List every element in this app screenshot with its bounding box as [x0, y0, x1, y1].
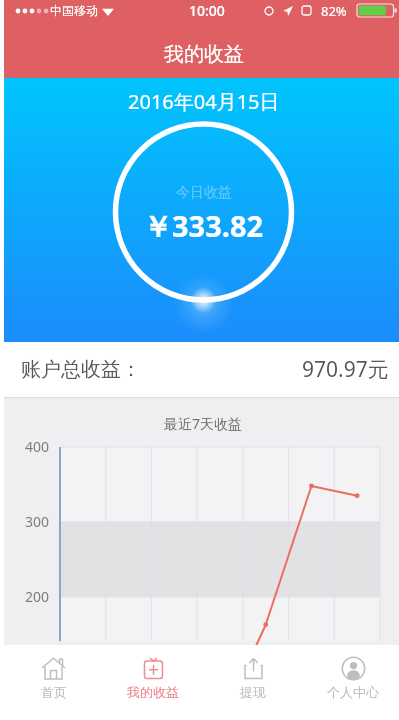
- staticText: 个人中心: [327, 684, 379, 700]
- staticText: 账户总收益：: [21, 357, 141, 382]
- staticText: ￥333.82: [143, 206, 264, 246]
- staticText: 中国移动: [50, 3, 98, 18]
- staticText: 300: [25, 512, 50, 531]
- staticText: 200: [25, 587, 50, 606]
- button[interactable]: 个人中心: [303, 645, 399, 700]
- staticText: 最近7天收益: [164, 414, 243, 433]
- staticText: 2016年04月15日: [128, 88, 280, 115]
- button[interactable]: 首页: [4, 645, 103, 700]
- staticText: 400: [25, 437, 50, 456]
- staticText: 首页: [41, 684, 67, 700]
- staticText: 82%: [321, 2, 347, 20]
- staticText: 10:00: [189, 1, 225, 20]
- staticText: 970.97元: [302, 355, 389, 384]
- button[interactable]: 账户总收益：: [4, 342, 399, 397]
- staticText: 今日收益: [176, 184, 232, 202]
- button[interactable]: 提现: [203, 645, 303, 700]
- staticText: 我的收益: [164, 42, 244, 67]
- staticText: 提现: [240, 684, 266, 700]
- staticText: 我的收益: [127, 684, 179, 700]
- button[interactable]: 我的收益: [103, 645, 203, 700]
